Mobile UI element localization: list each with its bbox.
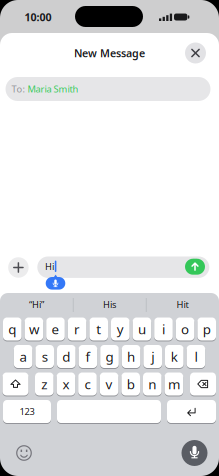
button[interactable]: e bbox=[0, 0, 219, 476]
staticText: v bbox=[106, 375, 113, 393]
button[interactable]: q bbox=[0, 0, 219, 476]
staticText: r bbox=[74, 320, 80, 338]
staticText: c bbox=[84, 375, 90, 393]
button[interactable]: g bbox=[0, 0, 219, 476]
staticText: h bbox=[127, 348, 135, 365]
staticText: d bbox=[62, 348, 70, 365]
button[interactable]: b bbox=[0, 0, 219, 476]
staticText: x bbox=[62, 375, 69, 393]
staticText: a bbox=[20, 348, 27, 365]
staticText: y bbox=[117, 320, 124, 338]
staticText: l bbox=[194, 348, 197, 365]
staticText: b bbox=[127, 375, 135, 393]
button[interactable]: “Hi” bbox=[0, 0, 219, 476]
button[interactable]: h bbox=[0, 0, 219, 476]
staticText: u bbox=[138, 320, 146, 338]
staticText: k bbox=[171, 348, 178, 365]
button[interactable]: m bbox=[0, 0, 219, 476]
button[interactable]: c bbox=[0, 0, 219, 476]
staticText: s bbox=[42, 348, 48, 365]
staticText: g bbox=[105, 348, 113, 365]
staticText: m bbox=[168, 375, 180, 393]
staticText: o bbox=[181, 320, 189, 338]
button[interactable]: k bbox=[0, 0, 219, 476]
button[interactable]: a bbox=[0, 0, 219, 476]
staticText: Hit bbox=[176, 298, 188, 311]
button[interactable]: j bbox=[0, 0, 219, 476]
button[interactable]: w bbox=[0, 0, 219, 476]
button[interactable]: x bbox=[0, 0, 219, 476]
button[interactable]: Add attachment bbox=[0, 0, 219, 476]
button[interactable]: n bbox=[0, 0, 219, 476]
staticText: i bbox=[162, 320, 165, 338]
staticText: q bbox=[8, 320, 16, 338]
staticText: z bbox=[41, 375, 47, 393]
staticText: n bbox=[148, 375, 156, 393]
button[interactable]: Hit bbox=[0, 0, 219, 476]
staticText: His bbox=[103, 298, 116, 311]
staticText: t bbox=[96, 320, 101, 338]
staticText: “Hi” bbox=[29, 298, 44, 311]
button[interactable]: Dictation bbox=[0, 0, 219, 476]
button[interactable]: 123 bbox=[0, 0, 219, 476]
staticText: 123 bbox=[19, 405, 34, 418]
staticText: To: bbox=[11, 83, 25, 95]
staticText: New Message bbox=[74, 46, 145, 60]
button[interactable] bbox=[0, 0, 219, 476]
button[interactable]: i bbox=[0, 0, 219, 476]
button[interactable]: d bbox=[0, 0, 219, 476]
staticText: f bbox=[85, 348, 90, 365]
button[interactable]: u bbox=[0, 0, 219, 476]
button[interactable]: o bbox=[0, 0, 219, 476]
button[interactable]: Dictate bbox=[0, 0, 219, 476]
button[interactable]: s bbox=[0, 0, 219, 476]
staticText: j bbox=[151, 348, 154, 365]
staticText: e bbox=[51, 320, 59, 338]
button[interactable]: Send bbox=[0, 0, 219, 476]
button[interactable]: Shift bbox=[0, 0, 219, 476]
button[interactable]: r bbox=[0, 0, 219, 476]
button[interactable]: p bbox=[0, 0, 219, 476]
button[interactable]: f bbox=[0, 0, 219, 476]
staticText: Hi bbox=[45, 260, 54, 272]
staticText: w bbox=[29, 320, 39, 338]
button[interactable]: z bbox=[0, 0, 219, 476]
button[interactable]: Message bbox=[0, 0, 219, 476]
staticText: 10:00 bbox=[24, 10, 51, 24]
button[interactable]: y bbox=[0, 0, 219, 476]
button[interactable]: v bbox=[0, 0, 219, 476]
button[interactable]: Delete bbox=[0, 0, 219, 476]
button[interactable]: Return bbox=[0, 0, 219, 476]
button[interactable]: Emoji bbox=[0, 0, 219, 476]
staticText: Maria Smith bbox=[27, 83, 78, 95]
staticText: p bbox=[203, 320, 211, 338]
button[interactable]: His bbox=[0, 0, 219, 476]
button[interactable]: t bbox=[0, 0, 219, 476]
button[interactable]: To bbox=[0, 0, 219, 476]
button[interactable]: l bbox=[0, 0, 219, 476]
button[interactable]: Close bbox=[0, 0, 219, 476]
